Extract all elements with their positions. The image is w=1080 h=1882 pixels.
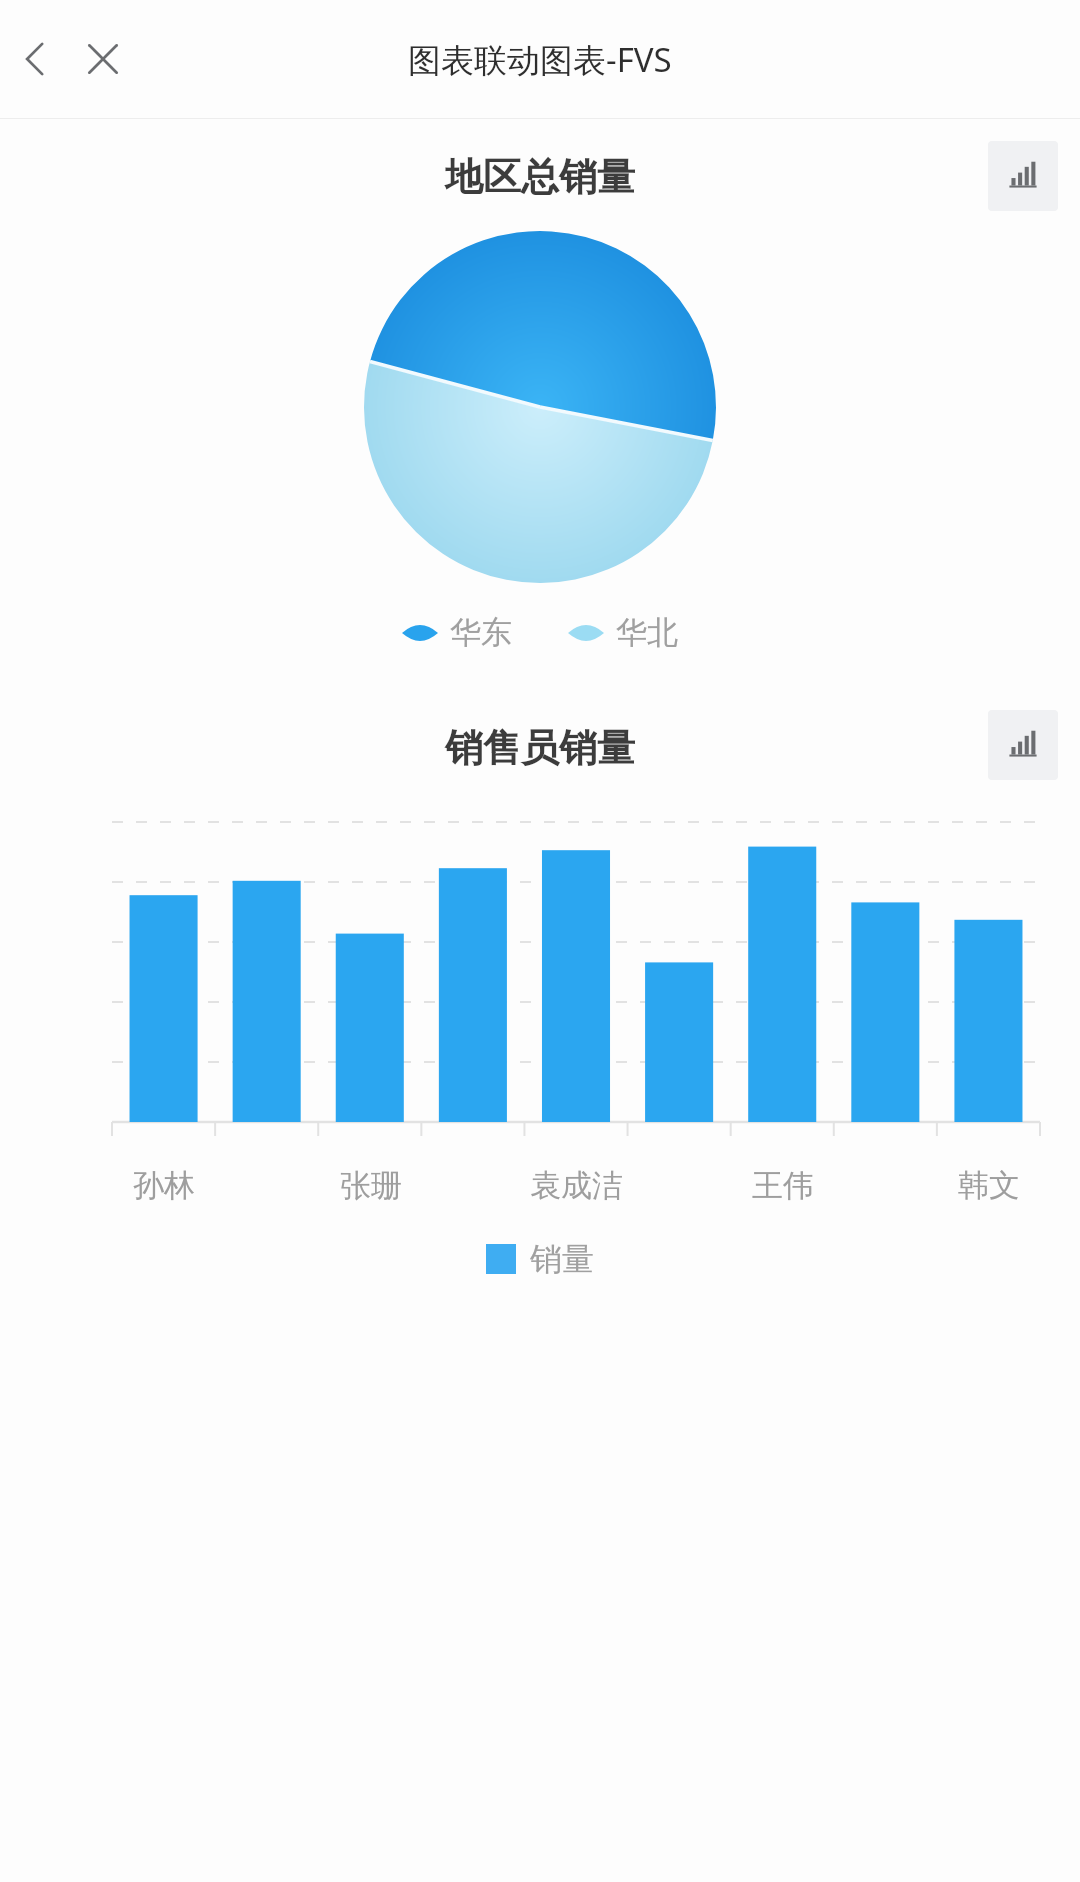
staticText: 华北 (616, 613, 678, 652)
staticText: 销售员销量 (445, 724, 635, 772)
staticText: 地区总销量 (445, 153, 635, 201)
button[interactable]: 华东 (402, 613, 512, 652)
staticText: 张珊 (340, 1166, 402, 1205)
staticText: 图表联动图表-FVS (408, 37, 672, 82)
staticText: 王伟 (752, 1166, 814, 1205)
button[interactable]: Back (4, 28, 66, 90)
button[interactable]: Close (72, 28, 134, 90)
staticText: 孙林 (133, 1166, 195, 1205)
button[interactable]: Switch chart type (988, 710, 1058, 780)
staticText: 销量 (530, 1239, 594, 1279)
button[interactable]: Switch chart type (988, 141, 1058, 211)
staticText: 华东 (450, 613, 512, 652)
staticText: 袁成洁 (530, 1166, 623, 1205)
staticText: 韩文 (958, 1166, 1020, 1205)
button[interactable]: 华北 (568, 613, 678, 652)
button[interactable]: 销量 (486, 1239, 594, 1279)
